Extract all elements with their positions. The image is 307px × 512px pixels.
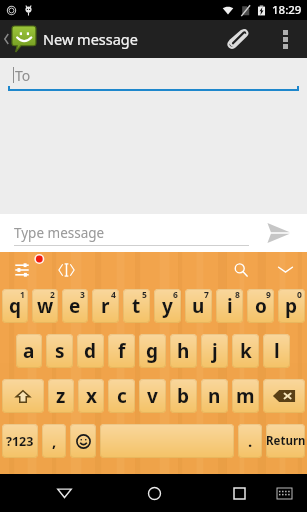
button[interactable]: r — [92, 289, 119, 323]
staticText: 7 — [204, 289, 209, 301]
staticText: To — [15, 66, 31, 85]
button[interactable]: q — [2, 289, 28, 323]
button[interactable]: t — [123, 289, 150, 323]
staticText: 18:29 — [272, 2, 302, 18]
button[interactable]: i — [216, 289, 243, 323]
staticText: k — [240, 338, 252, 364]
staticText: i — [227, 293, 233, 319]
button[interactable]: ?123 — [2, 424, 38, 458]
button[interactable]: b — [170, 379, 197, 413]
staticText: p — [285, 293, 298, 319]
button[interactable]: Send — [249, 214, 307, 252]
button[interactable]: d — [77, 334, 104, 368]
staticText: , — [52, 431, 57, 451]
staticText: 0 — [297, 289, 302, 301]
staticText: 6 — [173, 289, 178, 301]
button[interactable]: u — [185, 289, 212, 323]
button[interactable]: Back — [42, 474, 86, 512]
button[interactable]: h — [170, 334, 197, 368]
button[interactable]: Attach — [219, 20, 254, 58]
staticText: n — [208, 383, 221, 409]
staticText: 5 — [142, 289, 147, 301]
staticText: v — [147, 383, 158, 409]
staticText: j — [212, 338, 218, 364]
button[interactable]: Recent apps — [217, 474, 261, 512]
button[interactable]: m — [232, 379, 259, 413]
button[interactable]: g — [139, 334, 166, 368]
button[interactable]: Switch keyboard — [267, 474, 301, 512]
staticText: h — [177, 338, 190, 364]
staticText: 9 — [266, 289, 271, 301]
button[interactable]: o — [247, 289, 274, 323]
button[interactable]: Resize keyboard — [44, 252, 88, 287]
staticText: z — [56, 383, 66, 409]
button[interactable]: s — [46, 334, 73, 368]
button[interactable] — [70, 424, 96, 458]
button[interactable]: w — [32, 289, 58, 323]
button[interactable]: Return — [266, 424, 305, 458]
staticText: . — [248, 431, 253, 451]
staticText: x — [86, 383, 97, 409]
staticText: y — [162, 293, 173, 319]
staticText: 8 — [235, 289, 240, 301]
staticText: r — [101, 293, 110, 319]
button[interactable]: l — [263, 334, 290, 368]
staticText: g — [146, 338, 159, 364]
staticText: New message — [43, 29, 138, 49]
button[interactable] — [263, 379, 305, 413]
button[interactable]: a — [16, 334, 42, 368]
button[interactable]: f — [108, 334, 135, 368]
staticText: u — [192, 293, 205, 319]
button[interactable] — [100, 424, 234, 458]
button[interactable]: x — [78, 379, 104, 413]
staticText: t — [132, 293, 141, 319]
staticText: a — [23, 338, 35, 364]
staticText: m — [236, 383, 255, 409]
button[interactable]: Keyboard settings — [0, 252, 44, 287]
staticText: o — [255, 293, 267, 319]
staticText: e — [69, 293, 81, 319]
staticText: d — [84, 338, 97, 364]
staticText: w — [37, 293, 54, 319]
button[interactable]: c — [108, 379, 135, 413]
staticText: 3 — [80, 289, 85, 301]
button[interactable]: v — [139, 379, 166, 413]
staticText: s — [55, 338, 65, 364]
button[interactable]: n — [201, 379, 228, 413]
staticText: Type message — [14, 224, 105, 242]
staticText: q — [9, 293, 22, 319]
button[interactable]: y — [154, 289, 181, 323]
button[interactable]: e — [62, 289, 88, 323]
staticText: Return — [266, 433, 305, 449]
button[interactable]: k — [232, 334, 259, 368]
button[interactable]: j — [201, 334, 228, 368]
staticText: 1 — [20, 289, 25, 301]
button[interactable]: Hide keyboard — [263, 252, 307, 287]
staticText: c — [117, 383, 127, 409]
button[interactable]: . — [238, 424, 262, 458]
button[interactable]: More options — [275, 20, 295, 58]
staticText: l — [274, 338, 280, 364]
staticText: f — [118, 338, 126, 364]
button[interactable]: , — [42, 424, 66, 458]
button[interactable]: Navigate up — [0, 20, 12, 58]
staticText: 4 — [111, 289, 116, 301]
staticText: ?123 — [6, 433, 34, 450]
button[interactable]: Search — [219, 252, 263, 287]
staticText: 2 — [50, 289, 55, 301]
button[interactable]: Home — [132, 474, 176, 512]
button[interactable]: z — [48, 379, 74, 413]
button[interactable]: p — [278, 289, 305, 323]
staticText: b — [177, 383, 190, 409]
button[interactable] — [2, 379, 44, 413]
